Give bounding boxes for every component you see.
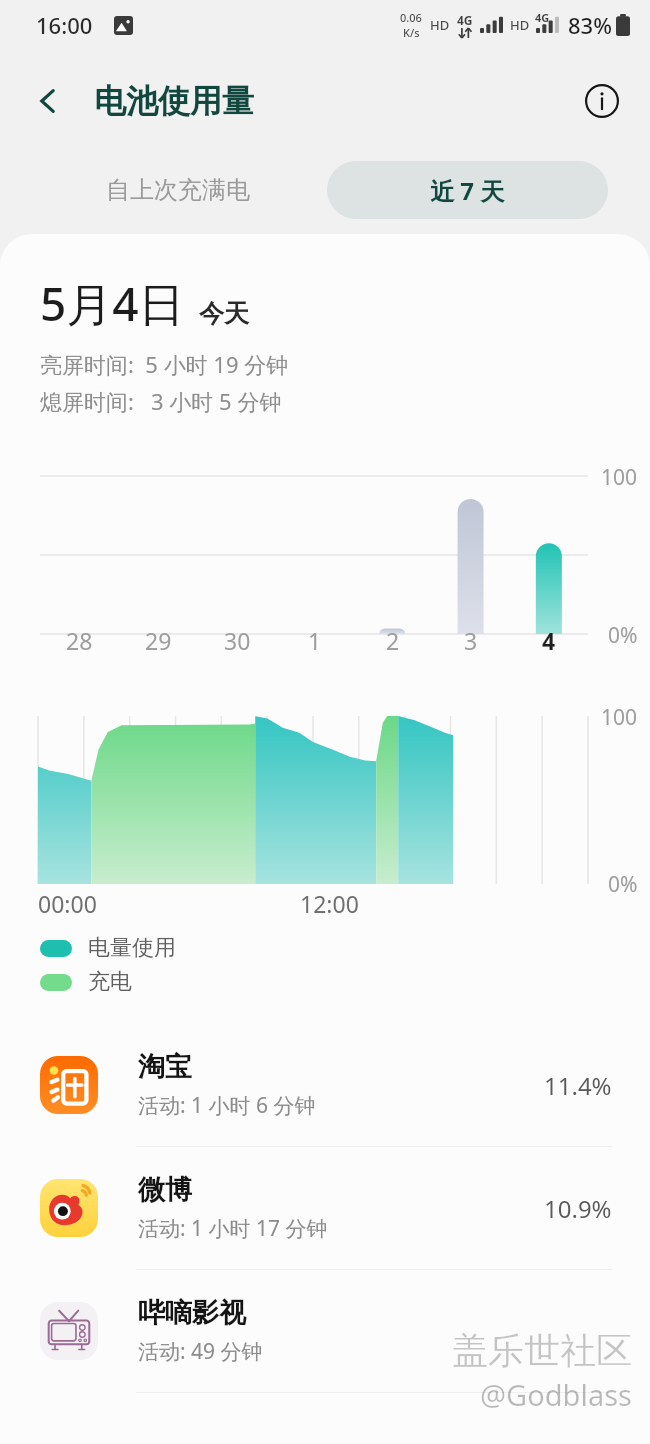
- staticText: 充电: [88, 968, 132, 996]
- staticText: 0.06: [400, 10, 422, 25]
- staticText: 活动: 1 小时 6 分钟: [138, 1091, 316, 1120]
- staticText: 电池使用量: [94, 81, 254, 121]
- staticText: 29: [145, 625, 172, 656]
- staticText: 淘宝: [138, 1050, 192, 1084]
- staticText: @Godblass: [480, 1375, 632, 1414]
- staticText: 电量使用: [88, 934, 176, 962]
- staticText: 83%: [568, 10, 612, 40]
- staticText: 11.4%: [544, 1069, 612, 1102]
- staticText: 10.9%: [544, 1192, 612, 1225]
- staticText: 28: [66, 625, 93, 656]
- staticText: 活动: 1 小时 17 分钟: [138, 1214, 328, 1243]
- staticText: 4: [542, 625, 556, 656]
- staticText: 活动: 49 分钟: [138, 1337, 263, 1366]
- button[interactable]: Information: [576, 75, 628, 127]
- staticText: 4G: [535, 10, 550, 25]
- staticText: 盖乐世社区: [452, 1328, 632, 1373]
- button[interactable]: 自上次充满电: [62, 161, 294, 219]
- button[interactable]: 近 7 天: [327, 161, 608, 219]
- button[interactable]: Back: [20, 73, 76, 129]
- staticText: 熄屏时间: 3 小时 5 分钟: [40, 386, 282, 416]
- staticText: 1: [308, 625, 322, 656]
- button[interactable]: 淘宝: [0, 1024, 650, 1146]
- staticText: HD: [430, 16, 450, 34]
- staticText: 30: [224, 625, 251, 656]
- staticText: 亮屏时间: 5 小时 19 分钟: [40, 349, 289, 379]
- staticText: HD: [510, 16, 530, 34]
- staticText: 微博: [138, 1173, 192, 1207]
- staticText: 16:00: [36, 10, 93, 40]
- staticText: 4G: [457, 12, 473, 28]
- staticText: 100: [601, 703, 638, 732]
- staticText: 哔嘀影视: [138, 1296, 246, 1330]
- staticText: 100: [601, 463, 638, 492]
- staticText: 0%: [608, 870, 638, 899]
- staticText: 自上次充满电: [106, 175, 250, 205]
- staticText: 3: [464, 625, 478, 656]
- button[interactable]: 哔嘀影视: [0, 1270, 650, 1392]
- staticText: 0%: [608, 621, 638, 650]
- staticText: 近 7 天: [430, 174, 505, 207]
- staticText: K/s: [403, 25, 420, 40]
- staticText: 00:00: [38, 888, 97, 919]
- staticText: 12:00: [300, 888, 359, 919]
- staticText: 2: [386, 625, 400, 656]
- button[interactable]: 微博: [0, 1147, 650, 1269]
- staticText: 今天: [199, 298, 249, 329]
- staticText: 5月4日: [40, 272, 185, 335]
